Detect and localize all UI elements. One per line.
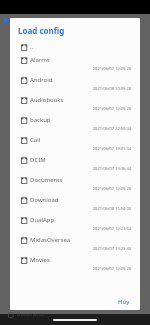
staticText: 2021/06/08 16:54:00 [21, 206, 131, 211]
staticText: Movies [30, 256, 50, 264]
staticText: Hủy [118, 298, 130, 306]
button[interactable]: Movies [14, 253, 136, 273]
staticText: Alarms [30, 56, 50, 64]
button[interactable]: Download [14, 193, 136, 213]
staticText: .. [30, 43, 34, 51]
other: Home gesture [53, 319, 97, 321]
button[interactable]: Audiobooks [14, 93, 136, 113]
staticText: Documents [30, 176, 63, 184]
button[interactable]: Android [14, 73, 136, 93]
staticText: 2021/06/07 19:01:34 [21, 146, 131, 151]
staticText: Android [30, 76, 53, 84]
button[interactable]: backup [14, 113, 136, 133]
staticText: DCIM [30, 156, 46, 164]
button[interactable]: .. [14, 40, 136, 53]
staticText: DualApp [30, 216, 55, 224]
button[interactable]: Documents [14, 173, 136, 193]
staticText: Audiobooks [30, 96, 64, 104]
staticText: Download [30, 196, 59, 204]
button[interactable]: Hủy [112, 295, 136, 309]
button[interactable]: MidasOversea [14, 233, 136, 253]
staticText: 2021/06/07 22:55:04 [21, 126, 131, 131]
button[interactable]: Alarms [14, 53, 136, 73]
staticText: 2021/06/07 12:26:28 [21, 66, 131, 71]
staticText: 2021/06/07 13:36:34 [21, 166, 131, 171]
staticText: 2021/06/07 12:23:54 [21, 226, 131, 231]
staticText: 2021/06/07 12:26:28 [21, 186, 131, 191]
staticText: 2021/06/07 12:26:28 [21, 106, 131, 111]
button[interactable]: Call [14, 133, 136, 153]
staticText: 2021/06/08 10:09:28 [21, 86, 131, 91]
staticText: 2021/06/07 13:23:40 [21, 246, 131, 251]
staticText: MidasOversea [30, 236, 71, 244]
staticText: Call [30, 136, 41, 144]
button[interactable]: DCIM [14, 153, 136, 173]
button[interactable]: DualApp [14, 213, 136, 233]
staticText: 2021/06/07 12:26:28 [21, 266, 131, 271]
staticText: backup [30, 116, 51, 124]
staticText: Documents [17, 311, 44, 318]
staticText: Load config [18, 25, 65, 36]
